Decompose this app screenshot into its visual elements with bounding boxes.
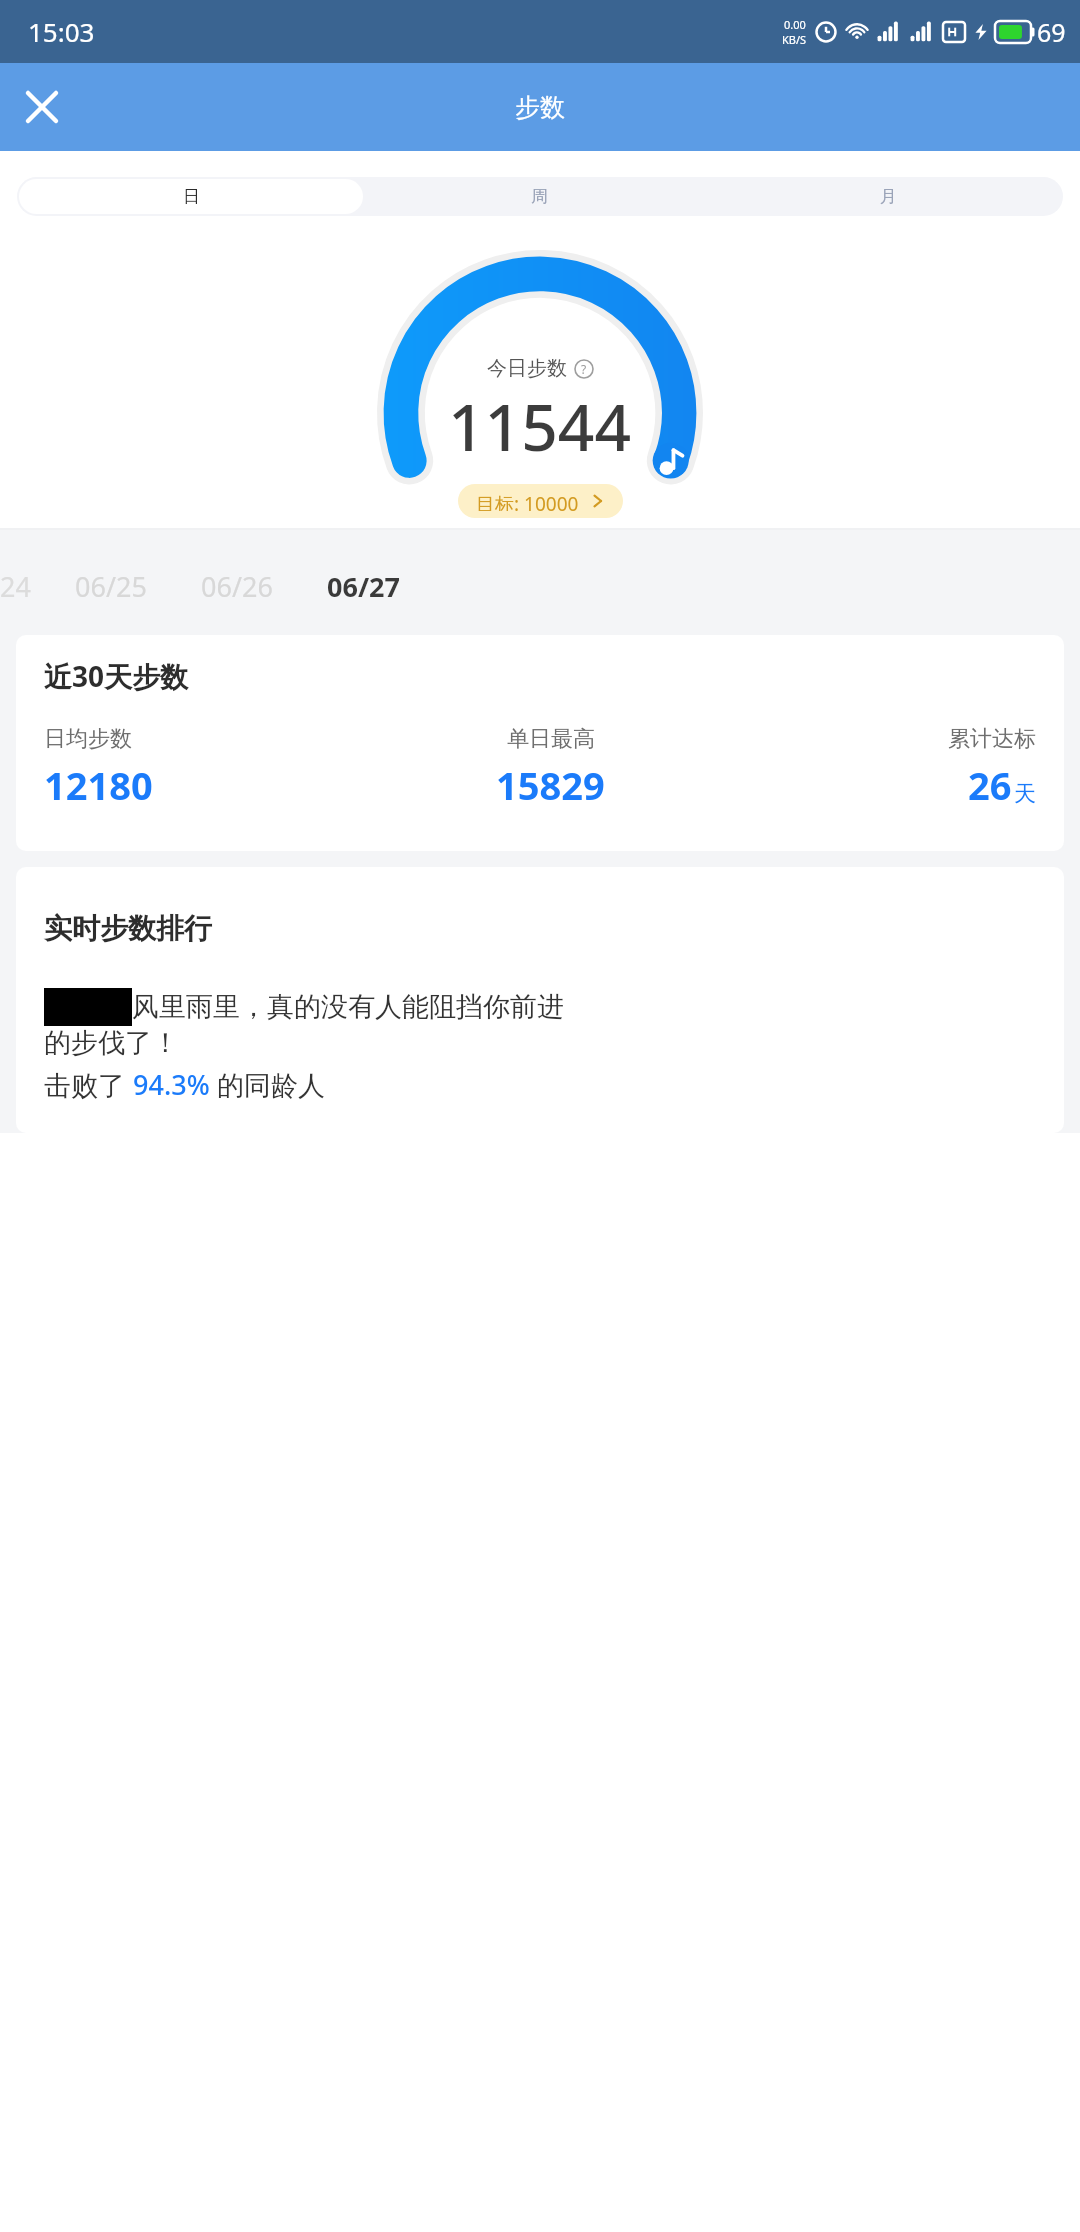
staticText: 今日步数	[487, 356, 567, 381]
button[interactable]: Help	[574, 359, 594, 379]
staticText: 94.3%	[133, 1066, 210, 1103]
staticText: 06/27	[327, 568, 400, 605]
staticText: 近30天步数	[44, 657, 189, 695]
staticText: 实时步数排行	[44, 911, 212, 946]
staticText: 单日最高	[507, 725, 595, 753]
staticText: 26	[968, 759, 1012, 811]
staticText: 步数	[515, 92, 565, 123]
staticText: 目标: 10000	[476, 491, 579, 511]
staticText: 的同龄人	[210, 1066, 326, 1103]
staticText: 11544	[448, 383, 632, 470]
button[interactable]: 目标: 10000	[458, 484, 623, 518]
button[interactable]: 实时步数排行	[16, 867, 1064, 1133]
button[interactable]: 06/25	[48, 568, 174, 605]
staticText: 日	[183, 186, 200, 207]
button[interactable]: 周	[367, 179, 712, 214]
staticText: 累计达标	[948, 725, 1036, 753]
staticText: 06/26	[201, 568, 273, 605]
staticText: /24	[0, 568, 31, 605]
staticText: 15829	[496, 759, 605, 811]
staticText: 天	[1014, 780, 1036, 808]
staticText: 12180	[44, 759, 153, 811]
button[interactable]: 06/26	[174, 568, 300, 605]
button[interactable]: 近30天步数	[16, 635, 1064, 851]
staticText: 06/25	[75, 568, 147, 605]
staticText: 月	[880, 186, 897, 207]
staticText: 69	[1037, 15, 1066, 49]
button[interactable]: Close	[14, 79, 70, 135]
button[interactable]: 日	[19, 179, 363, 214]
staticText: 日均步数	[44, 725, 132, 753]
staticText: 击败了	[44, 1066, 133, 1103]
button[interactable]: 06/27	[300, 568, 426, 605]
staticText: KB/S	[782, 32, 807, 47]
button[interactable]: 月	[716, 179, 1061, 214]
staticText: ?	[581, 361, 587, 377]
staticText: 0.00	[784, 17, 806, 32]
staticText: 风里雨里，真的没有人能阻挡你前进	[132, 990, 564, 1024]
staticText: 周	[531, 186, 548, 207]
staticText: 15:03	[28, 14, 95, 49]
staticText: 的步伐了！	[44, 1026, 179, 1060]
